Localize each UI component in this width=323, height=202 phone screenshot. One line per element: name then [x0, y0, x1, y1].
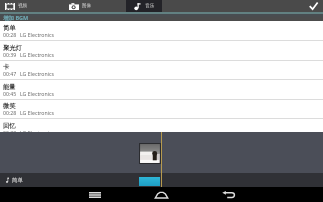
staticText: 00:28 — [3, 31, 17, 38]
staticText: LG Electronics — [20, 90, 54, 97]
staticText: 图像 — [82, 3, 92, 9]
button[interactable]: 微笑 — [0, 99, 323, 119]
staticText: LG Electronics — [20, 51, 54, 58]
staticText: 微笑 — [3, 102, 16, 110]
staticText: LG Electronics — [20, 109, 54, 116]
staticText: 00:39 — [3, 51, 17, 58]
button[interactable]: 简单 — [0, 21, 323, 41]
staticText: LG Electronics — [20, 129, 54, 132]
button[interactable]: 聚光灯 — [0, 41, 323, 61]
staticText: 能量 — [3, 83, 16, 91]
staticText: 简单 — [3, 24, 16, 32]
staticText: 卡 — [3, 63, 10, 71]
button[interactable]: Home — [143, 187, 180, 202]
staticText: LG Electronics — [20, 31, 54, 38]
staticText: 00:47 — [3, 70, 17, 77]
staticText: 简单 — [12, 177, 23, 184]
button[interactable]: 卡 — [0, 60, 323, 80]
button[interactable]: Done — [304, 0, 323, 12]
button[interactable]: 图像 — [63, 0, 126, 12]
button[interactable]: 增加 BGM — [0, 14, 323, 22]
staticText: 音乐 — [145, 3, 155, 9]
staticText: 回忆 — [3, 122, 16, 130]
button[interactable]: 能量 — [0, 80, 323, 100]
button[interactable]: Back — [210, 187, 247, 202]
staticText: 00:28 — [3, 109, 17, 116]
staticText: 00:45 — [3, 90, 17, 97]
staticText: 增加 BGM — [3, 14, 29, 22]
button[interactable]: Recent apps — [76, 187, 113, 202]
staticText: 聚光灯 — [3, 44, 22, 52]
button[interactable]: 音乐 — [126, 0, 162, 12]
staticText: 00:32 — [3, 129, 17, 132]
staticText: LG Electronics — [20, 70, 54, 77]
staticText: 视频 — [18, 3, 28, 9]
button[interactable]: 视频 — [0, 0, 63, 12]
button[interactable]: 回忆 — [0, 119, 323, 132]
